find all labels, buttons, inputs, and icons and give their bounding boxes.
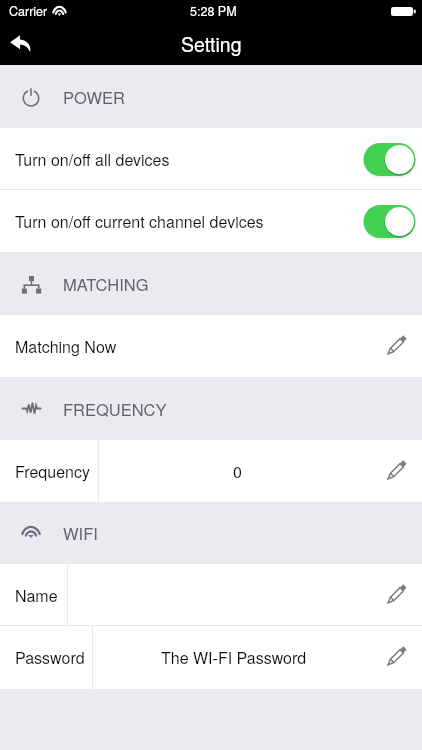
button[interactable]: Toggle xyxy=(363,142,416,177)
staticText: FREQUENCY xyxy=(63,397,167,421)
button[interactable]: Edit Name xyxy=(375,564,422,626)
staticText: POWER xyxy=(63,85,125,109)
staticText: 0 xyxy=(233,460,242,483)
button[interactable]: Turn on/off current channel devices xyxy=(0,190,422,252)
staticText: Frequency xyxy=(15,460,90,483)
staticText: MATCHING xyxy=(63,272,149,296)
staticText: The WI-FI Password xyxy=(161,646,307,669)
button[interactable]: Password xyxy=(0,626,422,689)
button[interactable]: Turn on/off all devices xyxy=(0,128,422,190)
button[interactable]: Edit Matching Now xyxy=(375,315,422,377)
button[interactable]: Edit Frequency xyxy=(375,440,422,502)
staticText: Matching Now xyxy=(15,335,117,358)
staticText: Turn on/off current channel devices xyxy=(15,210,264,233)
staticText: WIFI xyxy=(63,521,98,545)
button[interactable]: Name xyxy=(0,564,422,626)
button[interactable]: Matching Now xyxy=(0,315,422,377)
staticText: Name xyxy=(15,584,58,607)
staticText: Setting xyxy=(181,30,242,58)
button[interactable]: Edit Password xyxy=(375,626,422,689)
button[interactable]: Back xyxy=(0,22,42,65)
button[interactable]: Frequency xyxy=(0,440,422,502)
staticText: 5:28 PM xyxy=(190,2,237,20)
button[interactable]: Toggle xyxy=(363,204,416,239)
staticText: Password xyxy=(15,646,85,669)
staticText: Turn on/off all devices xyxy=(15,148,170,171)
staticText: Carrier xyxy=(9,2,48,20)
